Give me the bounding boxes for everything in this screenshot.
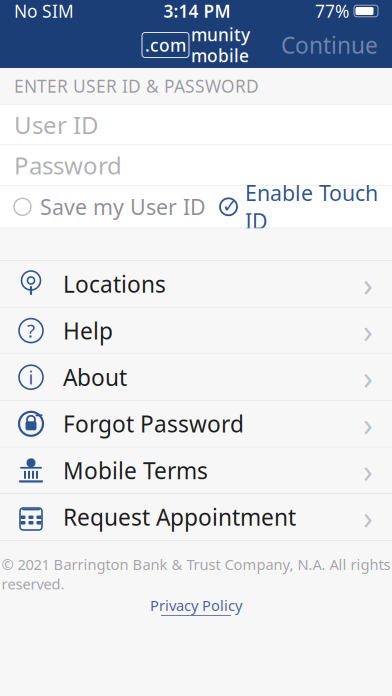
staticText: ›: [363, 449, 373, 492]
button[interactable]: Locations: [0, 261, 392, 308]
button[interactable]: Continue: [267, 22, 392, 68]
button[interactable]: Mobile Terms: [0, 447, 392, 494]
staticText: Enable Touch ID: [245, 178, 378, 235]
button[interactable]: Save my User ID: [14, 185, 206, 229]
button[interactable]: ?: [0, 308, 392, 354]
staticText: Request Appointment: [63, 502, 296, 532]
staticText: .com: [145, 33, 186, 56]
staticText: Password: [14, 149, 122, 181]
button[interactable]: Privacy Policy: [150, 596, 242, 616]
button[interactable]: Request Appointment: [0, 494, 392, 541]
staticText: ✓: [222, 195, 238, 216]
button[interactable]: Forgot Password: [0, 401, 392, 447]
staticText: About: [63, 362, 127, 392]
staticText: Continue: [281, 30, 378, 60]
staticText: User ID: [14, 109, 99, 141]
button[interactable]: Password: [0, 145, 392, 185]
staticText: © 2021 Barrington Bank & Trust Company, …: [1, 555, 390, 594]
button[interactable]: i: [0, 354, 392, 401]
staticText: Mobile Terms: [63, 455, 208, 485]
button[interactable]: User ID: [0, 105, 392, 145]
staticText: Forgot Password: [63, 409, 244, 439]
staticText: 77%: [315, 0, 349, 22]
staticText: Help: [63, 315, 113, 346]
staticText: ›: [363, 403, 373, 445]
staticText: ›: [363, 309, 373, 352]
staticText: mobile: [191, 44, 249, 67]
staticText: ›: [363, 263, 373, 305]
staticText: ?: [27, 318, 35, 343]
staticText: ›: [363, 356, 373, 398]
staticText: ENTER USER ID & PASSWORD: [14, 74, 259, 97]
staticText: Privacy Policy: [150, 596, 242, 615]
staticText: Save my User ID: [40, 193, 206, 221]
staticText: Locations: [63, 269, 166, 299]
staticText: 3:14 PM: [163, 0, 230, 22]
staticText: munity: [191, 23, 250, 46]
button[interactable]: ✓: [219, 170, 378, 243]
staticText: No SIM: [14, 0, 74, 22]
staticText: i: [28, 365, 33, 390]
staticText: ›: [363, 496, 373, 538]
